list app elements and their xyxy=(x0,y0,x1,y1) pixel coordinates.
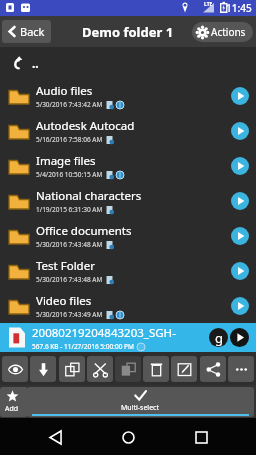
button[interactable]: View xyxy=(2,387,28,417)
button[interactable]: Play Image files xyxy=(230,156,250,176)
button[interactable]: Back xyxy=(2,20,51,43)
staticText: Office documents xyxy=(36,223,132,239)
button[interactable]: Share xyxy=(200,356,226,382)
staticText: Back xyxy=(20,24,45,39)
staticText: 5/30/2016 7:43:42 AM xyxy=(36,100,103,109)
staticText: Autodesk Autocad xyxy=(36,118,135,134)
staticText: g xyxy=(215,329,223,347)
button[interactable]: Autodesk Autocad xyxy=(0,113,256,148)
staticText: 5/16/2016 7:58:06 AM xyxy=(36,135,103,144)
button[interactable]: Actions xyxy=(192,22,253,42)
button[interactable]: Play Autodesk Autocad xyxy=(230,121,250,141)
staticText: Actions xyxy=(211,25,246,39)
button[interactable]: Back xyxy=(39,420,73,454)
button[interactable]: New xyxy=(31,387,56,417)
staticText: 20080219204843203_SGH-i400_En...df xyxy=(32,325,208,341)
staticText: 5/30/2016 7:43:48 AM xyxy=(36,240,103,249)
button[interactable]: Add xyxy=(0,387,24,417)
staticText: Audio files xyxy=(36,83,93,99)
button[interactable]: Cut xyxy=(87,356,113,382)
button[interactable]: National characters xyxy=(0,183,256,218)
staticText: View xyxy=(7,404,23,414)
button[interactable]: More xyxy=(228,356,254,382)
button[interactable]: Test Folder xyxy=(0,253,256,288)
staticText: Test Folder xyxy=(36,258,95,274)
button[interactable]: Google xyxy=(208,327,229,348)
staticText: National characters xyxy=(36,188,142,204)
button[interactable]: View xyxy=(2,356,28,382)
staticText: Add xyxy=(5,404,19,414)
staticText: 5/30/2016 7:43:49 AM xyxy=(36,310,103,319)
staticText: LTE xyxy=(204,1,213,8)
button[interactable]: Play file xyxy=(229,327,250,348)
staticText: Image files xyxy=(36,153,96,169)
staticText: Multi-select xyxy=(121,403,160,413)
button[interactable]: Multi-select xyxy=(27,387,254,417)
button[interactable]: Paste xyxy=(115,356,141,382)
button[interactable]: 20080219204843203_SGH-i400_En...df xyxy=(0,323,256,352)
staticText: 1/19/2015 6:31:30 AM xyxy=(36,205,103,214)
staticText: Demo folder 1 xyxy=(82,23,174,41)
button[interactable]: Delete xyxy=(143,356,169,382)
button[interactable]: .. xyxy=(0,47,256,78)
button[interactable]: Play Audio files xyxy=(230,86,250,106)
staticText: 5/4/2016 10:50:15 AM xyxy=(36,170,103,179)
button[interactable]: Upload xyxy=(59,387,93,417)
button[interactable]: Video files xyxy=(0,288,256,323)
staticText: Video files xyxy=(36,293,92,309)
staticText: 5/30/2016 7:43:48 AM xyxy=(36,275,103,284)
button[interactable]: Play Test Folder xyxy=(230,261,250,281)
button[interactable]: Copy xyxy=(59,356,85,382)
button[interactable]: Play Video files xyxy=(230,296,250,316)
staticText: .. xyxy=(32,55,39,71)
button[interactable]: Image files xyxy=(0,148,256,183)
staticText: 567.6 KB - 11/27/2016 5:00:00 PM xyxy=(32,342,134,351)
button[interactable]: Recents xyxy=(184,420,218,454)
button[interactable]: Download xyxy=(30,356,56,382)
button[interactable]: Home xyxy=(111,420,145,454)
button[interactable]: Play Office documents xyxy=(230,226,250,246)
staticText: 11:45 xyxy=(226,1,252,15)
button[interactable]: Office documents xyxy=(0,218,256,253)
button[interactable]: Audio files xyxy=(0,78,256,113)
button[interactable]: Rename xyxy=(171,356,197,382)
button[interactable]: Play National characters xyxy=(230,191,250,211)
